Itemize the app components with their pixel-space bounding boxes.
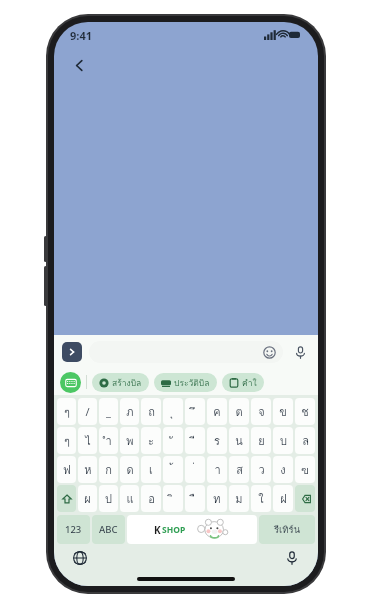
button[interactable]: ป <box>99 485 118 512</box>
staticText: ภ <box>126 403 134 420</box>
staticText: สร้างบิล <box>112 376 142 390</box>
staticText: ส <box>236 461 243 478</box>
button[interactable]: ่ <box>185 456 205 483</box>
button[interactable]: ว <box>251 456 271 483</box>
button[interactable]: ใ <box>251 485 271 512</box>
button[interactable]: ี <box>185 427 205 454</box>
staticText: 9:41 <box>70 28 92 43</box>
staticText: ค <box>213 403 221 420</box>
button[interactable]: Backspace <box>295 485 315 512</box>
staticText: ผ <box>84 490 91 507</box>
button[interactable]: ค <box>207 398 227 425</box>
button[interactable]: ไ <box>78 427 97 454</box>
button[interactable]: ต <box>229 398 249 425</box>
button[interactable]: Back <box>66 52 92 78</box>
button[interactable]: สร้างบิล <box>92 373 149 392</box>
button[interactable]: ก <box>99 456 118 483</box>
staticText: ถ <box>148 403 155 420</box>
button[interactable]: ห <box>78 456 97 483</box>
button[interactable]: ผ <box>78 485 97 512</box>
button[interactable]: ๆ <box>57 427 76 454</box>
staticText: ข <box>279 403 287 420</box>
button[interactable]: / <box>78 398 97 425</box>
button[interactable]: ม <box>229 485 249 512</box>
staticText: บ <box>280 432 287 449</box>
button[interactable]: จ <box>251 398 271 425</box>
button[interactable]: Dictation <box>282 548 302 568</box>
staticText: ะ <box>148 432 154 449</box>
staticText: แ <box>126 490 134 507</box>
button[interactable]: แ <box>120 485 139 512</box>
button[interactable]: Shift <box>57 485 76 512</box>
staticText: ๆ <box>64 432 70 449</box>
staticText: ป <box>105 490 112 507</box>
staticText: ท <box>213 490 221 507</box>
staticText: ำ <box>105 432 112 449</box>
button[interactable] <box>89 341 283 363</box>
staticText: ประวัติบิล <box>174 376 210 390</box>
button[interactable]: ฝ <box>273 485 293 512</box>
staticText: ต <box>235 403 243 420</box>
button[interactable]: ด <box>120 456 139 483</box>
button[interactable]: ุ <box>163 398 183 425</box>
staticText: ด <box>126 461 134 478</box>
button[interactable]: ร <box>207 427 227 454</box>
button[interactable]: Expand <box>62 342 82 362</box>
button[interactable]: _ <box>99 398 118 425</box>
staticText: ล <box>302 432 309 449</box>
button[interactable]: ท <box>207 485 227 512</box>
button[interactable]: คำใ <box>222 373 264 392</box>
button[interactable]: ิ <box>163 485 183 512</box>
button[interactable]: ภ <box>120 398 139 425</box>
staticText: ห <box>84 461 92 478</box>
button[interactable]: า <box>207 456 227 483</box>
button[interactable]: น <box>229 427 249 454</box>
button[interactable]: ส <box>229 456 249 483</box>
button[interactable]: อ <box>141 485 161 512</box>
staticText: 123 <box>65 523 82 536</box>
button[interactable]: ถ <box>141 398 161 425</box>
staticText: ม <box>235 490 243 507</box>
staticText: ช <box>301 403 309 420</box>
staticText: า <box>214 461 221 478</box>
button[interactable]: ำ <box>99 427 118 454</box>
button[interactable]: ล <box>295 427 315 454</box>
staticText: ฟ <box>63 461 71 478</box>
button[interactable]: ช <box>295 398 315 425</box>
staticText: ว <box>258 461 265 478</box>
button[interactable]: ้ <box>163 456 183 483</box>
staticText: ไ <box>85 432 91 449</box>
button[interactable]: Keyboard <box>60 372 81 393</box>
button[interactable]: 123 <box>57 515 90 544</box>
button[interactable]: Space <box>127 515 257 544</box>
staticText: น <box>235 432 243 449</box>
button[interactable]: บ <box>273 427 293 454</box>
button[interactable]: ง <box>273 456 293 483</box>
staticText: ใ <box>258 490 264 507</box>
button[interactable]: Voice input <box>290 342 310 362</box>
button[interactable]: Change language <box>70 548 90 568</box>
button[interactable]: ื <box>185 485 205 512</box>
staticText: ร <box>214 432 220 449</box>
button[interactable]: ฟ <box>57 456 76 483</box>
button[interactable]: ABC <box>92 515 125 544</box>
staticText: ย <box>258 432 265 449</box>
staticText: ๆ <box>64 403 70 420</box>
button[interactable]: ะ <box>141 427 161 454</box>
button[interactable]: เ <box>141 456 161 483</box>
staticText: อ <box>148 490 155 507</box>
button[interactable]: รีเทิร์น <box>259 515 315 544</box>
button[interactable]: ฃ <box>295 456 315 483</box>
staticText: _ <box>106 404 111 419</box>
button[interactable]: ั <box>163 427 183 454</box>
staticText: ABC <box>99 523 118 536</box>
button[interactable]: ข <box>273 398 293 425</box>
staticText: ก <box>105 461 112 478</box>
button[interactable]: ๆ <box>57 398 76 425</box>
button[interactable]: พ <box>120 427 139 454</box>
button[interactable]: ึ <box>185 398 205 425</box>
staticText: ฝ <box>280 490 287 507</box>
button[interactable]: ประวัติบิล <box>154 373 217 392</box>
staticText: จ <box>258 403 265 420</box>
button[interactable]: ย <box>251 427 271 454</box>
